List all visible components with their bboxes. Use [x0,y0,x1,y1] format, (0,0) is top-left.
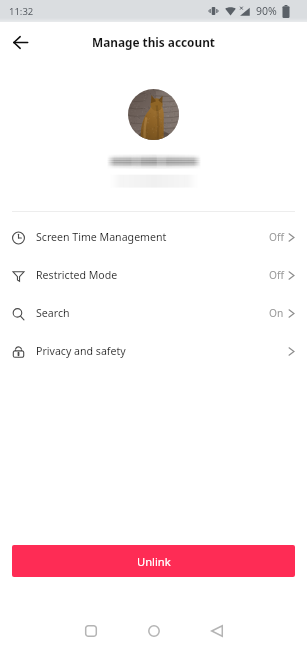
button[interactable]: Search [0,294,307,332]
button[interactable]: Back [199,613,235,649]
staticText: Privacy and safety [36,344,126,358]
button[interactable]: Restricted Mode [0,256,307,294]
staticText: On [269,306,284,320]
staticText: Unlink [137,554,171,569]
staticText: Screen Time Management [36,230,167,244]
staticText: Restricted Mode [36,268,118,282]
button[interactable]: Screen Time Management [0,218,307,256]
staticText: Off [269,230,284,244]
staticText: 11:32 [9,5,34,18]
button[interactable]: Recents [73,613,109,649]
button[interactable]: Profile photo [128,89,179,140]
button[interactable]: Privacy and safety [0,332,307,370]
staticText: Off [269,268,284,282]
staticText: Manage this account [92,34,215,50]
staticText: Search [36,306,70,320]
staticText: 90% [256,4,277,18]
button[interactable]: Home [136,613,172,649]
button[interactable]: Unlink [12,545,295,577]
button[interactable]: Back [5,27,35,57]
